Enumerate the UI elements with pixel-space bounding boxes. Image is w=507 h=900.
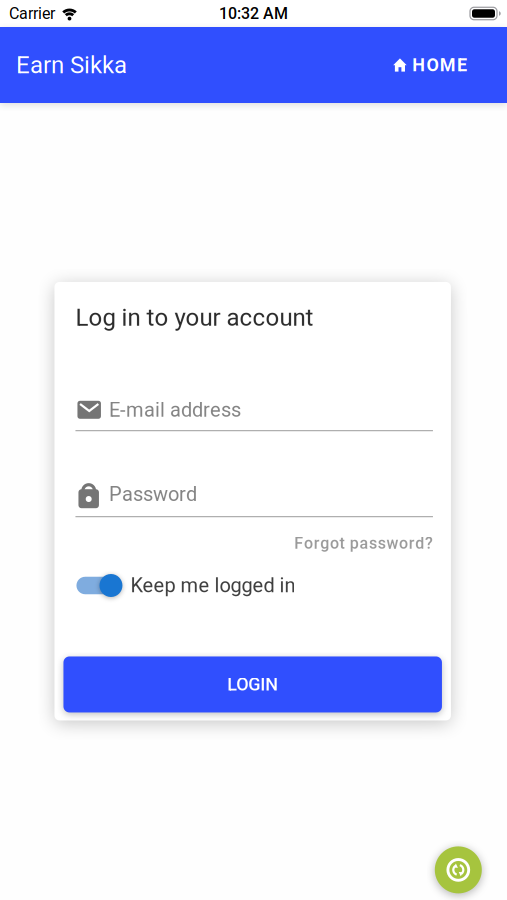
button[interactable]: Sync	[435, 846, 482, 893]
button[interactable]: Home	[393, 55, 507, 75]
staticText: Password	[109, 483, 197, 506]
staticText: Forgot password?	[294, 534, 433, 552]
button[interactable]: LOGIN	[63, 656, 442, 712]
staticText: LOGIN	[227, 674, 278, 695]
button[interactable]: Forgot password	[294, 534, 433, 552]
staticText: Earn Sikka	[16, 51, 127, 79]
staticText: Log in to your account	[75, 304, 313, 331]
staticText: Carrier	[9, 4, 55, 23]
staticText: 10:32 AM	[219, 4, 288, 23]
staticText: HOME	[412, 55, 467, 75]
button[interactable]: Password	[54, 480, 451, 508]
button[interactable]: E-mail address	[54, 398, 451, 421]
staticText: Keep me logged in	[130, 574, 295, 597]
button[interactable]: Keep me logged in	[54, 572, 451, 598]
staticText: E-mail address	[109, 398, 241, 421]
